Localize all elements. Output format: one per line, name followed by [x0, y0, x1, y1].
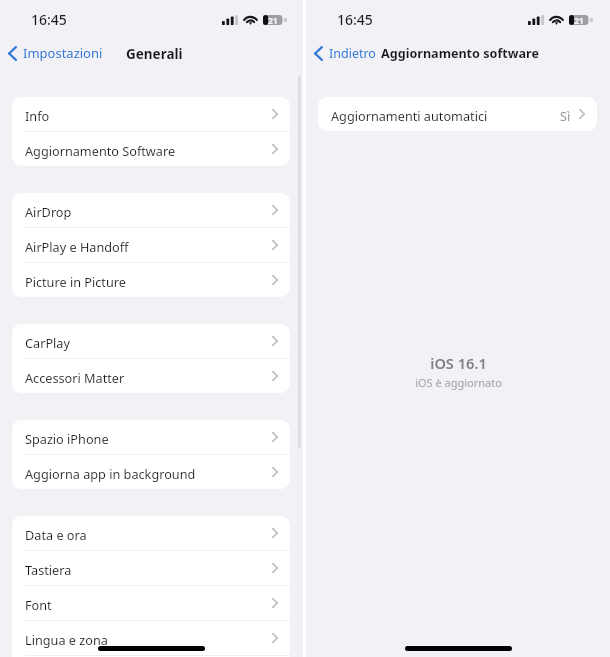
- staticText: Lingua e zona: [25, 631, 108, 648]
- staticText: Picture in Picture: [25, 273, 126, 290]
- button[interactable]: Aggiornamenti automatici: [318, 97, 597, 131]
- staticText: Tastiera: [25, 561, 72, 578]
- staticText: Spazio iPhone: [25, 430, 109, 447]
- button[interactable]: Aggiornamento Software: [12, 132, 290, 166]
- staticText: AirPlay e Handoff: [25, 238, 129, 255]
- staticText: Data e ora: [25, 526, 87, 543]
- button[interactable]: AirDrop: [12, 193, 290, 227]
- staticText: 21: [574, 15, 584, 25]
- staticText: Aggiorna app in background: [25, 465, 196, 482]
- staticText: Accessori Matter: [25, 369, 125, 386]
- staticText: Aggiornamento software: [381, 45, 539, 62]
- staticText: Aggiornamento Software: [25, 142, 176, 159]
- button[interactable]: Font: [12, 586, 290, 620]
- staticText: iOS 16.1: [430, 353, 487, 373]
- staticText: iOS è aggiornato: [415, 375, 502, 390]
- button[interactable]: Picture in Picture: [12, 263, 290, 297]
- staticText: Info: [25, 107, 50, 124]
- staticText: Sì: [560, 107, 571, 124]
- button[interactable]: Data e ora: [12, 516, 290, 550]
- button[interactable]: Indietro: [306, 40, 383, 66]
- staticText: Aggiornamenti automatici: [331, 107, 488, 124]
- staticText: Indietro: [329, 45, 376, 62]
- staticText: CarPlay: [25, 334, 70, 351]
- button[interactable]: Spazio iPhone: [12, 420, 290, 454]
- button[interactable]: AirPlay e Handoff: [12, 228, 290, 262]
- button[interactable]: Tastiera: [12, 551, 290, 585]
- staticText: 16:45: [31, 10, 67, 29]
- button[interactable]: Accessori Matter: [12, 359, 290, 393]
- staticText: Impostazioni: [23, 44, 103, 62]
- button[interactable]: CarPlay: [12, 324, 290, 358]
- button[interactable]: Info: [12, 97, 290, 131]
- staticText: Generali: [126, 45, 183, 63]
- staticText: AirDrop: [25, 203, 72, 220]
- button[interactable]: Impostazioni: [0, 40, 110, 66]
- button[interactable]: Lingua e zona: [12, 621, 290, 655]
- button[interactable]: Aggiorna app in background: [12, 455, 290, 489]
- staticText: 16:45: [337, 10, 373, 29]
- staticText: 21: [268, 15, 278, 25]
- staticText: Font: [25, 596, 52, 613]
